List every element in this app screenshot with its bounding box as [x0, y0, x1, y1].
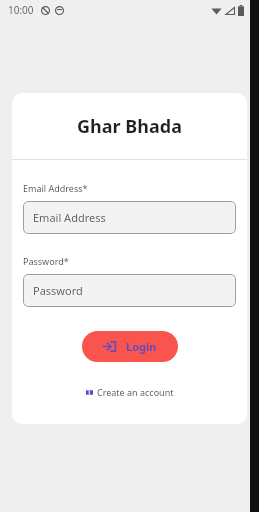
button[interactable]: Login	[82, 331, 178, 362]
staticText: Password*	[23, 255, 69, 267]
staticText: Login	[126, 339, 157, 354]
button[interactable]: Password	[23, 274, 236, 307]
staticText: Email Address	[33, 210, 106, 225]
staticText: Email Address*	[23, 182, 88, 194]
staticText: Password	[33, 283, 83, 298]
button[interactable]: Email Address	[23, 201, 236, 234]
staticText: 10:00	[8, 3, 34, 17]
staticText: Ghar Bhada	[77, 114, 182, 139]
staticText: Create an account	[97, 386, 174, 398]
button[interactable]: Create an account	[83, 384, 177, 400]
